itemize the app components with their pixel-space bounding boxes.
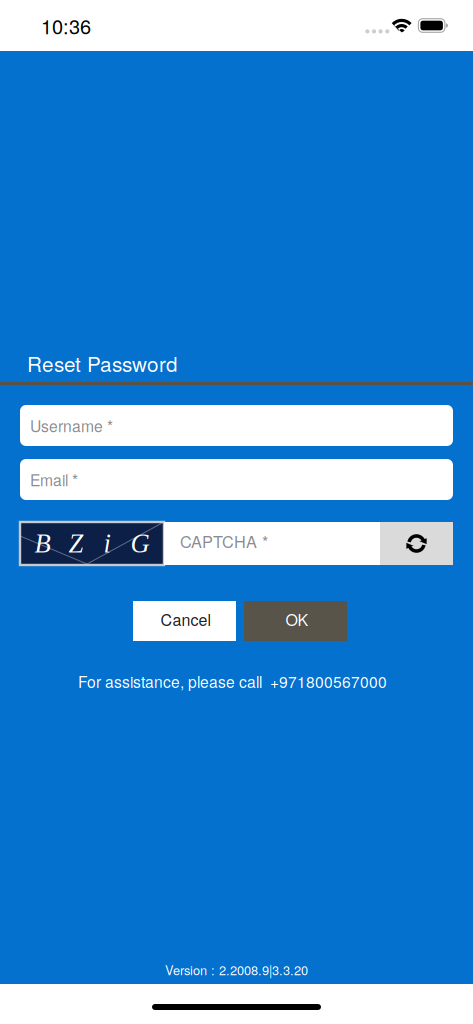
staticText: Cancel [160, 607, 211, 630]
staticText: For assistance, please call +97180056700… [78, 670, 387, 692]
staticText: B [34, 529, 50, 558]
staticText: Version : 2.2008.9|3.3.20 [165, 961, 308, 979]
button[interactable]: CAPTCHA * [164, 522, 380, 565]
staticText: Username * [30, 414, 113, 437]
staticText: CAPTCHA * [180, 529, 268, 553]
staticText: i [103, 529, 110, 558]
staticText: G [130, 529, 149, 558]
button[interactable]: OK [244, 601, 347, 641]
button[interactable]: Cancel [133, 601, 236, 641]
button[interactable]: Username * [20, 405, 453, 446]
staticText: OK [285, 607, 308, 630]
staticText: Z [68, 529, 83, 558]
staticText: Reset Password [27, 348, 178, 378]
button[interactable]: Email * [20, 459, 453, 500]
staticText: Email * [30, 468, 78, 491]
button[interactable]: Refresh captcha [380, 522, 453, 565]
staticText: 10:36 [41, 11, 91, 40]
